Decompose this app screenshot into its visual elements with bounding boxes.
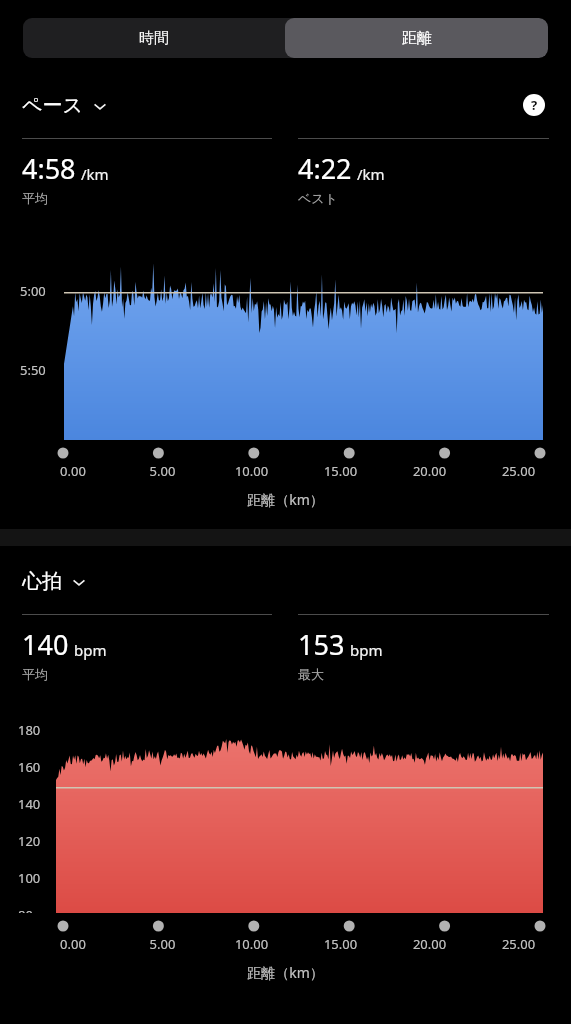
staticText: 5.00: [118, 462, 207, 480]
staticText: 距離（km）: [0, 963, 571, 982]
staticText: 80: [18, 906, 33, 913]
staticText: 20.00: [385, 935, 474, 953]
button[interactable]: 4:58: [22, 138, 272, 206]
staticText: 10.00: [207, 462, 296, 480]
button[interactable]: 4:22: [298, 138, 549, 206]
staticText: bpm: [350, 640, 383, 660]
staticText: bpm: [74, 640, 107, 660]
staticText: 120: [18, 832, 41, 850]
staticText: 時間: [139, 29, 169, 48]
staticText: 0.00: [28, 935, 118, 953]
staticText: 距離（km）: [0, 490, 571, 509]
button[interactable]: 140: [22, 614, 272, 682]
staticText: /km: [81, 164, 109, 184]
staticText: 10.00: [207, 935, 296, 953]
staticText: 25.00: [474, 462, 563, 480]
staticText: 最大: [298, 666, 324, 682]
staticText: 4:22: [298, 150, 352, 187]
staticText: 5:50: [20, 361, 46, 379]
staticText: 25.00: [474, 935, 563, 953]
staticText: 180: [18, 721, 41, 739]
button[interactable]: 心拍: [22, 569, 87, 594]
staticText: ?: [531, 96, 538, 114]
staticText: 5:00: [20, 282, 46, 300]
button[interactable]: ヘルプ: [519, 90, 549, 120]
staticText: 平均: [22, 190, 48, 206]
button[interactable]: 距離: [285, 18, 548, 58]
button[interactable]: ペース: [22, 93, 108, 118]
staticText: ペース: [22, 93, 83, 118]
button[interactable]: 153: [298, 614, 549, 682]
staticText: 距離: [402, 29, 432, 48]
staticText: 140: [22, 626, 69, 663]
staticText: 4:58: [22, 150, 76, 187]
staticText: 平均: [22, 666, 48, 682]
staticText: 100: [18, 869, 41, 887]
staticText: 0.00: [28, 462, 118, 480]
staticText: 5.00: [118, 935, 207, 953]
staticText: 心拍: [22, 569, 62, 594]
staticText: 153: [298, 626, 345, 663]
staticText: 160: [18, 758, 41, 776]
staticText: /km: [357, 164, 385, 184]
staticText: 15.00: [296, 935, 385, 953]
staticText: 140: [18, 795, 41, 813]
staticText: ベスト: [298, 190, 338, 206]
staticText: 15.00: [296, 462, 385, 480]
button[interactable]: 時間: [23, 18, 285, 58]
staticText: 20.00: [385, 462, 474, 480]
